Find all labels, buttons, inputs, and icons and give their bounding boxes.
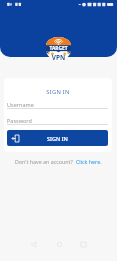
staticText: Click here. — [76, 158, 102, 165]
staticText: Password — [7, 117, 32, 124]
button[interactable]: Username — [7, 101, 108, 113]
button[interactable]: SIGN IN — [7, 130, 108, 146]
staticText: TARGET — [46, 45, 71, 52]
staticText: Don't have an account? — [15, 158, 73, 165]
button[interactable]: Password — [7, 117, 108, 129]
staticText: VPN — [46, 53, 71, 62]
button[interactable]: Click here. — [76, 158, 102, 165]
staticText: Username — [7, 101, 34, 108]
staticText: SIGN IN — [4, 88, 112, 96]
staticText: SIGN IN — [47, 135, 68, 142]
